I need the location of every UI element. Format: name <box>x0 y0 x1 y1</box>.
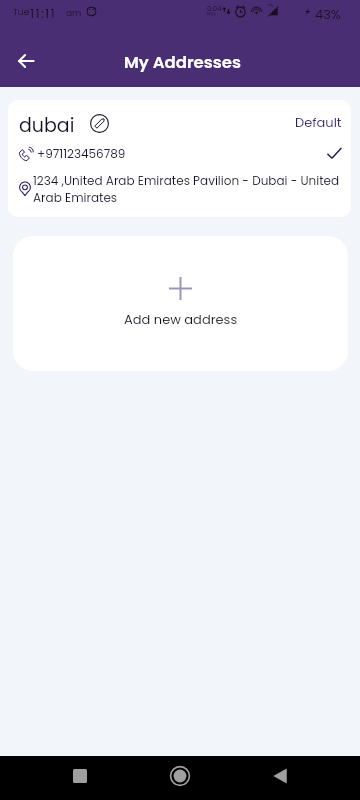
staticText: Add new address <box>124 310 238 328</box>
button[interactable]: dubai <box>8 100 351 217</box>
button[interactable]: Home <box>160 756 200 796</box>
staticText: 0.04 <box>207 4 222 14</box>
staticText: am <box>66 7 82 20</box>
staticText: 43% <box>315 5 341 23</box>
button[interactable]: Edit address <box>87 111 112 136</box>
staticText: kB/s <box>207 11 216 17</box>
button[interactable]: Back <box>8 43 43 78</box>
staticText: Tue <box>13 6 30 19</box>
staticText: 11:11 <box>30 4 56 22</box>
button[interactable]: Back <box>260 756 300 796</box>
button[interactable]: Recent apps <box>60 756 100 796</box>
staticText: dubai <box>19 112 75 139</box>
staticText: +971123456789 <box>37 145 126 162</box>
button[interactable]: Add new address <box>13 236 348 371</box>
staticText: 1234 ,United Arab Emirates Pavilion - Du… <box>33 172 343 206</box>
staticText: Default <box>295 113 342 131</box>
staticText: My Addresses <box>124 51 241 74</box>
